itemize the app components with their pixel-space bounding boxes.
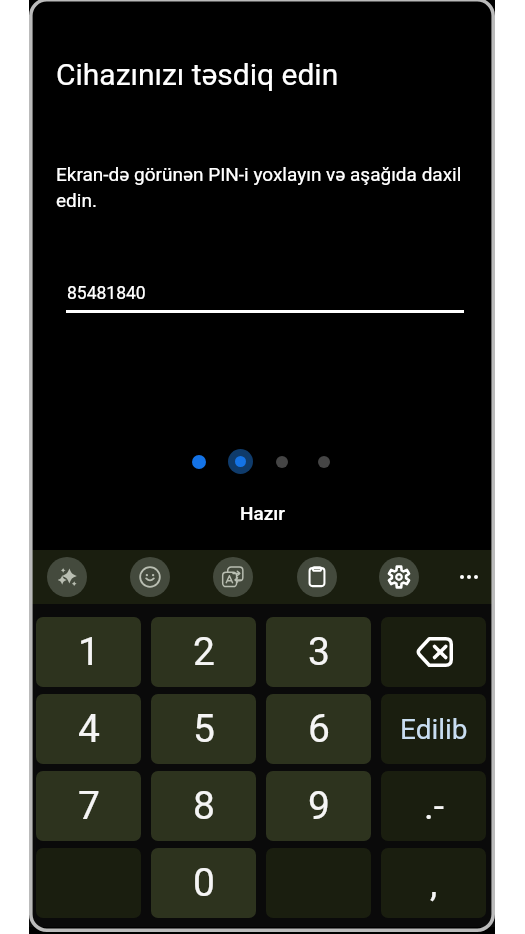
staticText: 3 — [308, 629, 330, 675]
button[interactable]: 3 — [266, 617, 371, 687]
button[interactable]: 9 — [266, 771, 371, 841]
staticText: 7 — [78, 783, 100, 829]
staticText: , — [430, 862, 438, 905]
staticText: Edilib — [400, 713, 468, 746]
button[interactable]: Translate — [213, 557, 253, 597]
button[interactable]: , — [381, 848, 486, 918]
button[interactable]: 8 — [151, 771, 256, 841]
staticText: .- — [424, 785, 444, 828]
staticText: 9 — [308, 783, 330, 829]
button[interactable]: Settings — [379, 557, 419, 597]
staticText: Ekran-də görünən PIN-i yoxlayın və aşağı… — [56, 163, 496, 212]
button[interactable]: 1 — [36, 617, 141, 687]
button[interactable]: Backspace — [381, 617, 486, 687]
staticText: 4 — [78, 706, 100, 752]
other: Backspace — [415, 637, 453, 667]
button[interactable]: Edilib — [381, 694, 486, 764]
staticText: 85481840 — [67, 283, 146, 304]
button[interactable]: Clipboard — [297, 557, 337, 597]
button[interactable]: 6 — [266, 694, 371, 764]
button[interactable]: 5 — [151, 694, 256, 764]
button[interactable]: 0 — [151, 848, 256, 918]
button[interactable]: 4 — [36, 694, 141, 764]
staticText: 8 — [193, 783, 215, 829]
staticText: 1 — [78, 629, 100, 675]
button[interactable]: Emoji — [130, 557, 170, 597]
staticText: 0 — [193, 860, 215, 906]
button[interactable]: 7 — [36, 771, 141, 841]
staticText: 5 — [193, 706, 215, 752]
staticText: 6 — [308, 706, 330, 752]
button[interactable]: More options — [460, 575, 478, 579]
button[interactable]: Suggestions — [47, 557, 87, 597]
button[interactable]: Hazır — [216, 496, 309, 530]
button[interactable]: PIN entry field — [66, 272, 464, 313]
button[interactable]: 2 — [151, 617, 256, 687]
staticText: Cihazınızı təsdiq edin — [56, 57, 339, 92]
button[interactable]: .- — [381, 771, 486, 841]
staticText: Hazır — [240, 502, 285, 524]
staticText: 2 — [193, 629, 215, 675]
